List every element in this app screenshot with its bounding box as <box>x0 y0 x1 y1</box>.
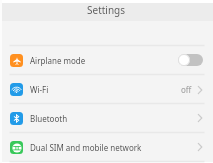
staticText: Wi-Fi <box>30 84 49 95</box>
staticText: Settings <box>87 3 126 17</box>
other: Open <box>197 113 203 123</box>
other: Open <box>197 85 203 95</box>
button[interactable]: Dual SIM and mobile network <box>0 133 213 161</box>
button[interactable]: Wi-Fi <box>0 75 213 103</box>
staticText: off <box>181 84 192 95</box>
staticText: Bluetooth <box>30 113 68 124</box>
other: Open <box>197 142 203 152</box>
button[interactable]: Airplane mode toggle <box>178 54 203 66</box>
button[interactable]: Airplane mode <box>0 46 213 74</box>
staticText: Dual SIM and mobile network <box>30 142 142 153</box>
button[interactable]: Bluetooth <box>0 104 213 132</box>
staticText: Airplane mode <box>30 55 86 66</box>
